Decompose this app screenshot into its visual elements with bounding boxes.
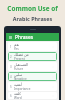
button[interactable]: Open navigation menu	[8, 35, 13, 40]
button[interactable]: 4	[8, 72, 57, 81]
staticText: من فضلك	[14, 52, 29, 57]
button[interactable]: 5	[8, 82, 57, 91]
staticText: المستقبل	[14, 63, 29, 67]
staticText: Negative	[14, 77, 27, 81]
button[interactable]: 1	[8, 42, 57, 51]
button[interactable]: 6	[8, 92, 57, 99]
staticText: كلمة	[14, 92, 21, 96]
staticText: Present	[14, 57, 25, 61]
button[interactable]: 2	[8, 52, 57, 61]
staticText: Future	[14, 67, 24, 71]
staticText: Importance	[14, 87, 31, 91]
staticText: سلبي	[14, 73, 23, 77]
staticText: Phrases	[15, 34, 34, 41]
staticText: Word	[14, 96, 22, 99]
staticText: Yes	[14, 47, 19, 51]
staticText: 5	[10, 85, 12, 89]
staticText: Common Use of	[0, 4, 65, 13]
staticText: نعم	[14, 43, 20, 47]
staticText: 6	[10, 94, 12, 98]
button[interactable]: 3	[8, 62, 57, 71]
staticText: أهمية	[14, 83, 22, 87]
staticText: Arabic Phrases	[0, 15, 65, 22]
staticText: 3	[10, 65, 12, 69]
staticText: 2	[10, 55, 12, 59]
staticText: 4	[10, 75, 12, 79]
staticText: 1	[10, 45, 12, 49]
